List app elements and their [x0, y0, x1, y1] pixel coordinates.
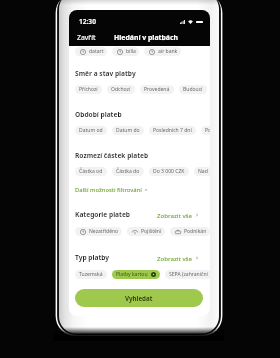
button[interactable]: Budoucí — [179, 85, 207, 94]
staticText: Do 3 000 CZK — [153, 168, 185, 175]
staticText: air bank — [158, 48, 178, 55]
button[interactable]: air bank — [144, 47, 181, 56]
button[interactable]: Zavřít — [77, 33, 96, 42]
staticText: billa — [126, 48, 136, 55]
staticText: Pojištění — [141, 228, 162, 235]
button[interactable]: Příchozí — [75, 85, 102, 94]
button[interactable]: Nezatříděno — [75, 227, 122, 236]
button[interactable]: Částka od — [75, 167, 107, 176]
staticText: Hledání v platbách — [114, 33, 179, 42]
staticText: Částka do — [116, 168, 140, 175]
staticText: Po — [205, 127, 210, 134]
button[interactable]: Další možnosti filtrování — [75, 186, 148, 194]
staticText: 12:30 — [79, 17, 96, 26]
button[interactable]: Tuzemská — [75, 270, 107, 279]
staticText: Posledních 7 dní — [153, 127, 192, 134]
staticText: Datum do — [116, 127, 140, 134]
staticText: Další možnosti filtrování — [75, 186, 142, 194]
staticText: Typ platby — [75, 253, 110, 262]
button[interactable]: Datum do — [112, 126, 144, 135]
button[interactable]: Provedená — [140, 85, 174, 94]
button[interactable]: Posledních 7 dní — [149, 126, 196, 135]
staticText: Nad — [198, 168, 208, 175]
button[interactable]: Vyhledat — [75, 289, 203, 307]
staticText: Nezatříděno — [89, 228, 119, 235]
staticText: Podnikán — [184, 228, 207, 235]
button[interactable]: Podnikán — [170, 227, 210, 236]
staticText: Směr a stav platby — [75, 69, 136, 78]
staticText: Rozmezí částek plateb — [75, 151, 149, 160]
staticText: Datum od — [79, 127, 103, 134]
staticText: Zobrazit vše — [157, 254, 193, 262]
button[interactable]: Zobrazit vše — [157, 254, 199, 262]
staticText: Zobrazit vše — [157, 211, 193, 219]
staticText: Kategorie plateb — [75, 210, 131, 219]
staticText: Tuzemská — [79, 271, 103, 278]
button[interactable]: Datum od — [75, 126, 107, 135]
staticText: Odchozí — [111, 86, 131, 93]
button[interactable]: Odchozí — [107, 85, 135, 94]
staticText: Provedená — [144, 86, 170, 93]
button[interactable]: Po — [201, 126, 210, 135]
button[interactable]: Nad — [194, 167, 210, 176]
staticText: Období plateb — [75, 110, 122, 119]
button[interactable]: Částka do — [112, 167, 144, 176]
staticText: Příchozí — [79, 86, 98, 93]
staticText: Platby kartou — [116, 271, 148, 278]
staticText: Budoucí — [183, 86, 203, 93]
button[interactable]: Zobrazit vše — [157, 211, 199, 219]
staticText: Částka od — [79, 168, 103, 175]
staticText: SEPA (zahraniční — [169, 271, 208, 278]
button[interactable]: datart — [75, 47, 107, 56]
button[interactable]: Pojištění — [127, 227, 165, 236]
button[interactable]: Do 3 000 CZK — [149, 167, 189, 176]
button[interactable]: SEPA (zahraniční — [165, 270, 210, 279]
staticText: Zavřít — [77, 33, 96, 42]
other: Remove filter — [151, 272, 156, 277]
button[interactable]: billa — [112, 47, 139, 56]
staticText: Vyhledat — [125, 294, 153, 302]
button[interactable]: Platby kartou — [112, 270, 160, 279]
staticText: datart — [89, 48, 104, 55]
